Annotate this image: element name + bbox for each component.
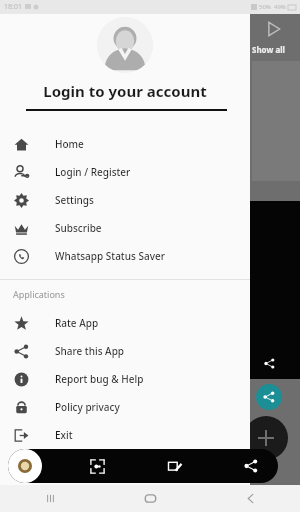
button[interactable]: Rate App	[0, 309, 250, 337]
button[interactable]: Exit	[0, 421, 250, 449]
staticText: Applications	[13, 288, 65, 300]
staticText: 18:01	[4, 2, 22, 12]
staticText: Policy privacy	[55, 400, 120, 414]
button[interactable]: Gallery thumbnail	[8, 449, 42, 483]
button[interactable]: Whatsapp Status Saver	[0, 242, 250, 270]
button[interactable]: Share this App	[0, 337, 250, 365]
staticText: Login to your account	[10, 81, 240, 101]
staticText: Share this App	[55, 344, 125, 358]
button[interactable]: Edit	[157, 449, 191, 483]
staticText: Report bug & Help	[55, 372, 144, 386]
button[interactable]: Share	[234, 449, 268, 483]
staticText: 49%	[274, 3, 286, 11]
button[interactable]: Login / Register	[0, 158, 250, 186]
button[interactable]: Home	[100, 485, 200, 512]
button[interactable]: Subscribe	[0, 214, 250, 242]
staticText: Login / Register	[55, 165, 131, 179]
staticText: Show all	[252, 44, 285, 55]
staticText: Home	[55, 137, 84, 151]
button[interactable]: Settings	[0, 186, 250, 214]
staticText: 50%	[259, 3, 271, 11]
staticText: Whatsapp Status Saver	[55, 249, 165, 263]
button[interactable]: Policy privacy	[0, 393, 250, 421]
staticText: Settings	[55, 193, 94, 207]
staticText: Subscribe	[55, 221, 102, 235]
button[interactable]: Scan	[80, 449, 114, 483]
button[interactable]: Recents	[0, 485, 100, 512]
staticText: Exit	[55, 428, 73, 442]
staticText: Rate App	[55, 316, 99, 330]
button[interactable]: Profile photo	[97, 17, 153, 73]
button[interactable]: Report bug & Help	[0, 365, 250, 393]
button[interactable]: Back	[200, 485, 300, 512]
button[interactable]: Home	[0, 130, 250, 158]
